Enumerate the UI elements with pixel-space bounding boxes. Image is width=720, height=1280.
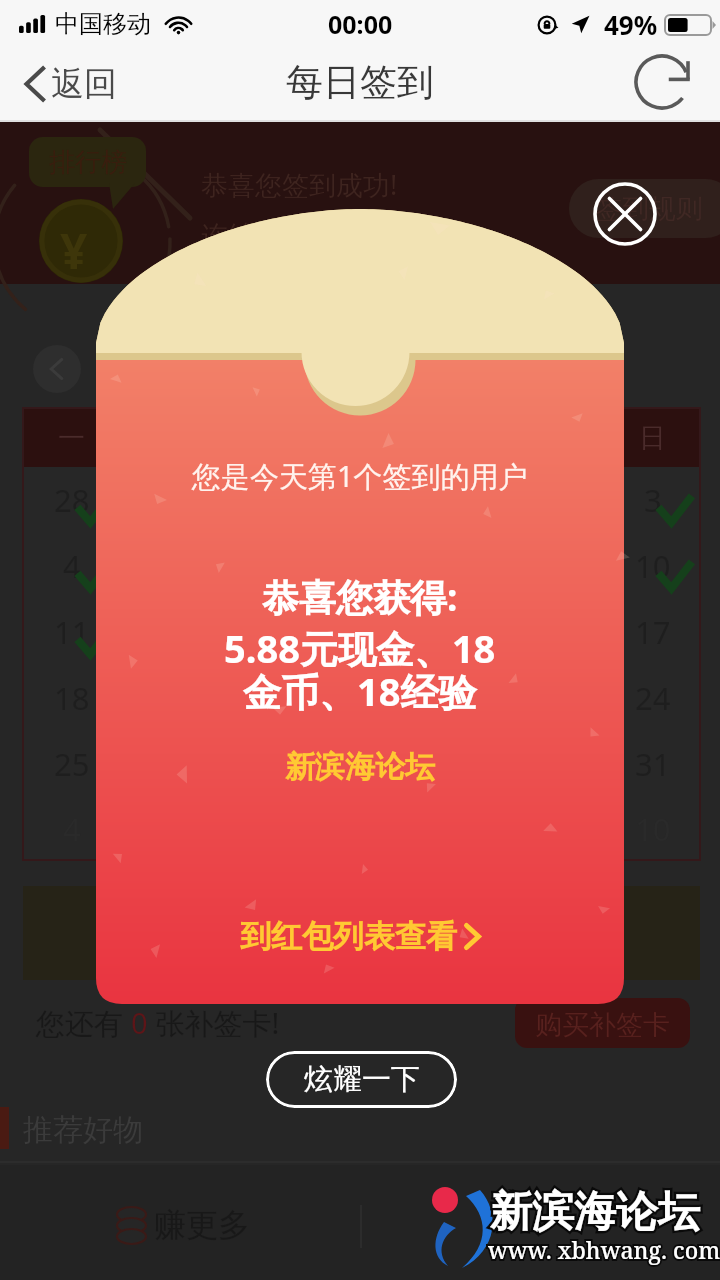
staticText: 1 (451, 479, 469, 521)
staticText: 您是今天第1个签到的用户 (192, 456, 528, 496)
staticText: 49% (604, 7, 658, 42)
staticText: 到红包列表查看 (240, 917, 457, 956)
button[interactable]: 排行榜 (29, 137, 146, 187)
staticText: 22 (442, 677, 478, 719)
staticText: 新滨海论坛 (285, 748, 435, 786)
staticText: 新滨海论坛 (490, 1186, 700, 1239)
button[interactable]: 赚更多 (117, 1205, 250, 1245)
staticText: 返回 (51, 63, 117, 105)
button[interactable]: Close (593, 182, 657, 246)
staticText: 每日签到 (286, 59, 434, 106)
staticText: 26 (151, 743, 187, 785)
button[interactable]: Refresh (628, 46, 696, 114)
staticText: 00:00 (328, 7, 393, 41)
staticText: 签到规则 (595, 192, 703, 226)
staticText: 20 (248, 677, 284, 719)
button[interactable]: 炫耀一下 (266, 1051, 457, 1108)
staticText: 恭喜您签到成功! (201, 166, 398, 203)
staticText: 金币、18经验 (243, 665, 477, 717)
staticText: 10 (635, 545, 671, 587)
staticText: 30 (248, 479, 284, 521)
staticText: 9 (548, 808, 566, 850)
staticText: 购买补签卡 (535, 1008, 670, 1038)
staticText: 11 (54, 611, 90, 653)
staticText: 6 (257, 545, 275, 587)
button[interactable]: 返回 (0, 55, 137, 113)
staticText: 中国移动 (55, 9, 151, 39)
staticText: 3 (644, 479, 662, 521)
staticText: 14 (345, 611, 381, 653)
staticText: 一 (58, 421, 85, 455)
staticText: 24 (635, 677, 671, 719)
staticText: 4 (63, 545, 81, 587)
staticText: 炫耀一下 (304, 1061, 420, 1098)
staticText: 恭喜您获得: (262, 571, 458, 622)
staticText: 31 (345, 479, 381, 521)
staticText: 推荐好物 (23, 1111, 143, 1149)
staticText: www. xbhwang. com (488, 1234, 720, 1265)
staticText: 15 (442, 611, 478, 653)
staticText: 0 (131, 1003, 148, 1042)
staticText: 7 (354, 545, 372, 587)
staticText: 新滨海论坛 (490, 1186, 700, 1239)
button[interactable]: 签到规则 (569, 179, 720, 238)
staticText: 28 (345, 743, 381, 785)
staticText: 5.88元现金、18 (224, 622, 496, 674)
staticText: 21 (345, 677, 381, 719)
staticText: 28 (54, 479, 90, 521)
staticText: 连续签到 3 天 (201, 216, 366, 253)
staticText: ¥ (60, 218, 88, 283)
staticText: 累计签到 3 天，再签 4 天得额外奖励 (143, 915, 580, 952)
staticText: 排行榜 (49, 146, 127, 179)
staticText: www. xbhwang. com (488, 1234, 720, 1265)
staticText: 13 (248, 611, 284, 653)
staticText: 张补签卡! (148, 1003, 280, 1043)
button[interactable]: 购买补签卡 (515, 998, 690, 1048)
staticText: 日 (639, 421, 666, 455)
button[interactable]: 到红包列表查看 (220, 909, 501, 964)
staticText: 29 (151, 479, 187, 521)
staticText: 赚更多 (154, 1205, 250, 1245)
staticText: 您还有 (36, 1003, 131, 1043)
